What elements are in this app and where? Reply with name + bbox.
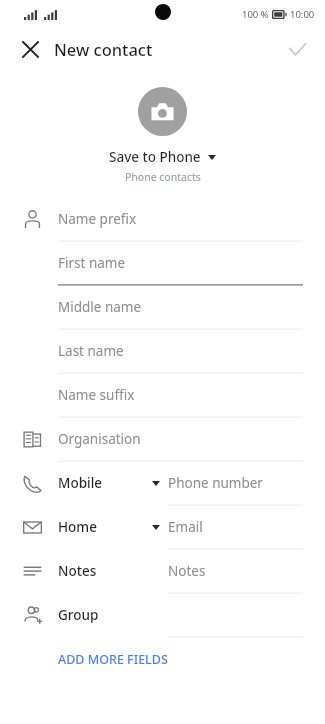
- staticText: New contact: [54, 38, 153, 60]
- staticText: 100 %: [242, 8, 269, 21]
- staticText: ADD MORE FIELDS: [58, 651, 168, 668]
- button[interactable]: Mobile: [0, 462, 325, 506]
- staticText: 10:00: [290, 8, 315, 21]
- staticText: Phone contacts: [125, 170, 201, 184]
- staticText: Home: [58, 518, 97, 536]
- button[interactable]: First name: [0, 242, 325, 286]
- button[interactable]: Name suffix: [0, 374, 325, 418]
- staticText: Name suffix: [58, 386, 135, 404]
- button[interactable]: Close: [10, 29, 50, 69]
- staticText: Organisation: [58, 430, 141, 448]
- staticText: Mobile: [58, 474, 103, 492]
- button[interactable]: Organisation: [0, 418, 325, 462]
- button[interactable]: Last name: [0, 330, 325, 374]
- staticText: Notes: [168, 562, 206, 580]
- button[interactable]: Middle name: [0, 286, 325, 330]
- button[interactable]: Save to Phone: [105, 147, 220, 167]
- button[interactable]: Group: [0, 594, 325, 638]
- staticText: Last name: [58, 342, 124, 360]
- staticText: Notes: [58, 562, 97, 580]
- staticText: Group: [58, 606, 99, 624]
- button[interactable]: Name prefix: [0, 198, 325, 242]
- staticText: Middle name: [58, 298, 142, 316]
- button[interactable]: Notes: [0, 550, 325, 594]
- staticText: Name prefix: [58, 210, 137, 228]
- staticText: Phone number: [168, 474, 263, 492]
- button[interactable]: Save contact: [277, 29, 317, 69]
- button[interactable]: Home: [0, 506, 325, 550]
- staticText: Save to Phone: [109, 148, 201, 166]
- button[interactable]: ADD MORE FIELDS: [0, 647, 182, 672]
- staticText: First name: [58, 254, 126, 272]
- button[interactable]: Add photo: [138, 87, 187, 136]
- staticText: Email: [168, 518, 203, 536]
